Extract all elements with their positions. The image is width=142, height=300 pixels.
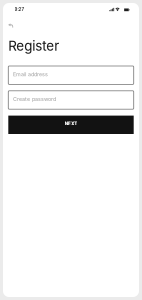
button[interactable]: Back: [3, 23, 19, 30]
button[interactable]: NEXT: [8, 116, 134, 134]
staticText: Create password: [13, 96, 56, 102]
staticText: NEXT: [65, 121, 77, 127]
staticText: 9:27: [14, 7, 24, 12]
button[interactable]: Email address: [8, 66, 134, 84]
staticText: Register: [8, 38, 59, 54]
staticText: Email address: [13, 71, 48, 77]
button[interactable]: Create password: [8, 91, 134, 109]
